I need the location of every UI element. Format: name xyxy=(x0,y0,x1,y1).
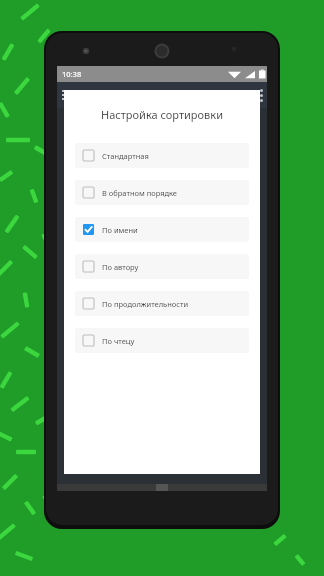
button[interactable]: По автору xyxy=(75,254,249,279)
staticText: В обратном порядке xyxy=(102,188,177,198)
staticText: По автору xyxy=(102,262,139,272)
staticText: Настройка сортировки xyxy=(64,107,260,122)
staticText: 10:38 xyxy=(62,69,82,79)
staticText: По имени xyxy=(102,225,138,235)
button[interactable]: По чтецу xyxy=(75,328,249,353)
button[interactable]: По имени xyxy=(75,217,249,242)
button[interactable]: По продолжительности xyxy=(75,291,249,316)
button[interactable]: В обратном порядке xyxy=(75,180,249,205)
button[interactable]: Стандартная xyxy=(75,143,249,168)
staticText: По чтецу xyxy=(102,336,135,346)
staticText: По продолжительности xyxy=(102,299,189,309)
staticText: Стандартная xyxy=(102,151,149,161)
